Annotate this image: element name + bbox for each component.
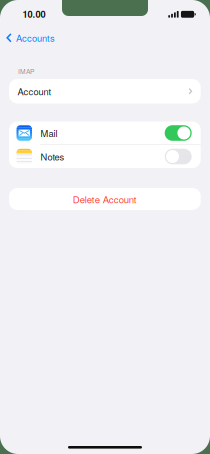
- button[interactable]: Delete Account: [9, 188, 201, 210]
- staticText: IMAP: [18, 66, 34, 76]
- staticText: Accounts: [16, 31, 55, 44]
- button[interactable]: Account: [9, 79, 201, 103]
- staticText: Account: [17, 85, 51, 98]
- staticText: Notes: [40, 150, 64, 163]
- button[interactable]: Accounts: [0, 30, 61, 46]
- staticText: 10.00: [22, 7, 45, 21]
- staticText: Delete Account: [73, 192, 137, 206]
- staticText: Mail: [40, 126, 57, 140]
- button[interactable]: Notes: [9, 145, 201, 168]
- button[interactable]: Mail: [9, 121, 201, 144]
